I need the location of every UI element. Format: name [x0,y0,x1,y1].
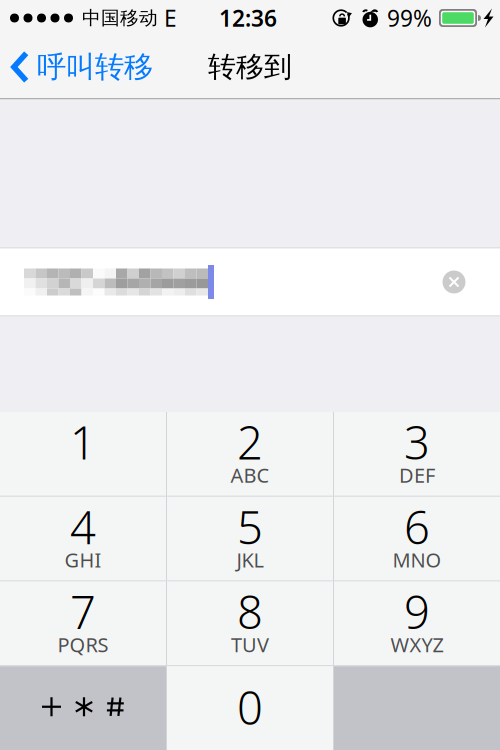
staticText: 中国移动 [82,6,158,29]
button[interactable]: 6 [334,497,500,581]
staticText: 8 [237,581,263,642]
staticText: 6 [404,497,430,557]
staticText: GHI [64,546,101,573]
staticText: 1 [70,412,96,472]
button[interactable]: 5 [167,497,333,581]
button[interactable]: 9 [334,581,500,665]
staticText: 12:36 [219,3,277,33]
button[interactable]: 7 [0,581,166,665]
staticText: E [164,3,177,33]
staticText: 4 [70,497,96,557]
staticText: TUV [231,631,269,658]
staticText: 2 [237,412,263,472]
button[interactable]: 2 [167,412,333,496]
staticText: PQRS [57,631,108,658]
staticText: WXYZ [390,631,443,658]
staticText: 7 [70,581,96,642]
staticText: 9 [404,581,430,642]
button[interactable]: 呼叫转移 [0,41,161,93]
button[interactable]: Plus star hash [0,666,166,750]
button[interactable]: Clear text [434,262,474,302]
staticText: JKL [236,546,263,573]
button[interactable]: 3 [334,412,500,496]
button[interactable]: 4 [0,497,166,581]
staticText: 0 [237,677,263,737]
staticText: 转移到 [208,50,292,84]
staticText: 5 [237,497,263,557]
staticText: 呼叫转移 [37,49,153,85]
button[interactable]: 8 [167,581,333,665]
staticText: 3 [404,412,430,472]
button[interactable]: 1 [0,412,166,496]
staticText: MNO [392,546,441,573]
staticText: DEF [399,462,435,488]
staticText: ABC [230,462,269,488]
button[interactable]: 0 [167,666,333,750]
staticText: 99% [387,3,432,33]
